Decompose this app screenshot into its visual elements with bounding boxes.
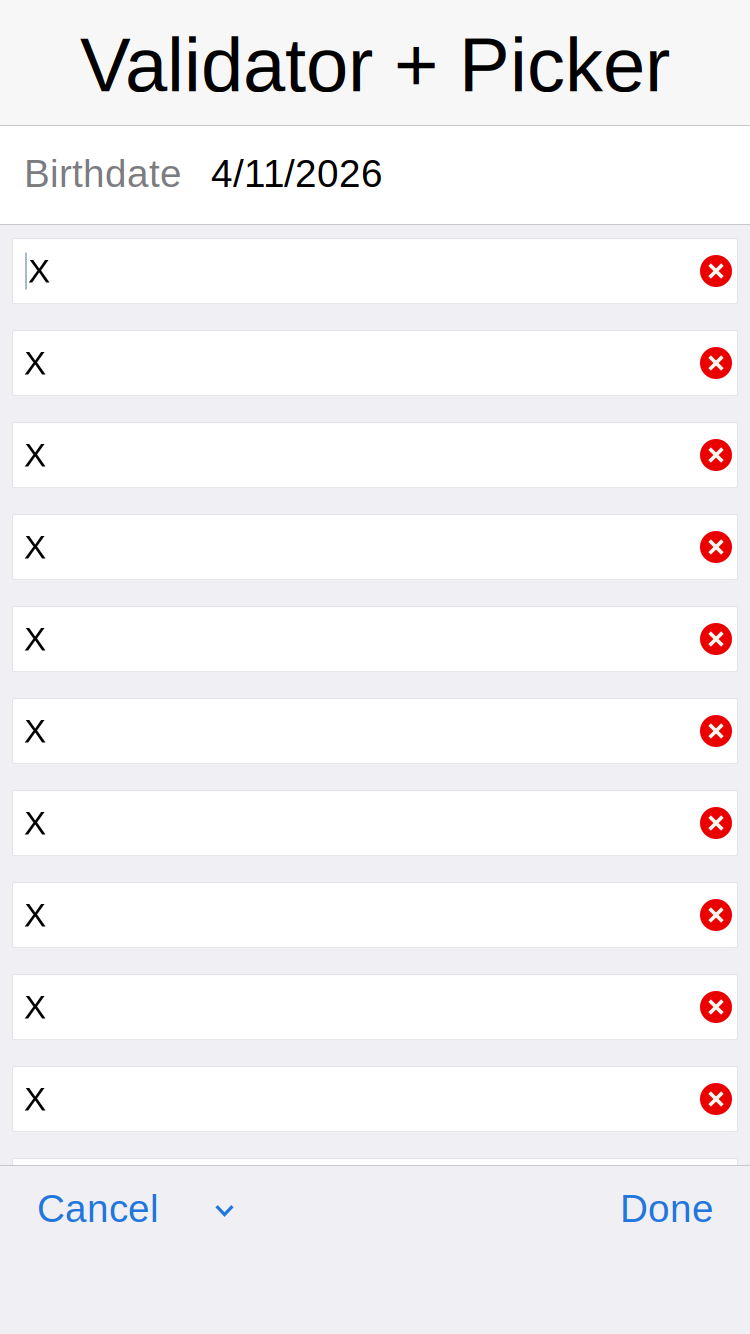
button[interactable]: Cancel [0, 1166, 189, 1252]
button[interactable]: Clear text [694, 698, 738, 764]
button[interactable]: Clear text [694, 238, 738, 304]
staticText: X [24, 528, 46, 566]
staticText: X [24, 988, 46, 1026]
staticText: 4/11/2026 [211, 152, 383, 195]
staticText: X [24, 712, 46, 750]
staticText: Cancel [37, 1187, 159, 1230]
staticText: Done [620, 1187, 714, 1230]
staticText: X [24, 620, 46, 658]
staticText: X [24, 344, 46, 382]
staticText: X [28, 252, 50, 290]
button[interactable]: Clear text [694, 422, 738, 488]
button[interactable]: Clear text [694, 514, 738, 580]
button[interactable]: Clear text [694, 1158, 738, 1224]
button[interactable]: Clear text [694, 974, 738, 1040]
button[interactable]: Clear text [694, 790, 738, 856]
button[interactable]: Clear text [694, 606, 738, 672]
staticText: X [24, 1080, 46, 1118]
staticText: X [24, 1172, 46, 1210]
button[interactable]: Clear text [694, 1066, 738, 1132]
staticText: Birthdate [24, 152, 182, 195]
button[interactable]: Birthdate [0, 126, 750, 224]
staticText: X [24, 804, 46, 842]
staticText: X [24, 436, 46, 474]
staticText: Validator + Picker [80, 22, 670, 107]
button[interactable]: Next field [189, 1172, 254, 1247]
button[interactable]: Clear text [694, 882, 738, 948]
button[interactable]: Done [590, 1166, 750, 1252]
staticText: X [24, 896, 46, 934]
button[interactable]: Clear text [694, 330, 738, 396]
